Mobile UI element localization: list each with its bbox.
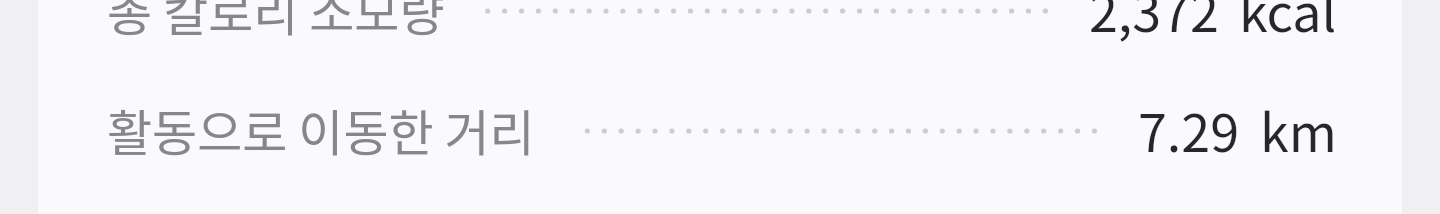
- staticText: 7.29: [1138, 92, 1240, 167]
- staticText: 활동으로 이동한 거리: [107, 94, 535, 165]
- staticText: 총 칼로리 소모량: [107, 0, 445, 45]
- button[interactable]: 총 칼로리 소모량: [38, 0, 1402, 58]
- staticText: kcal: [1239, 0, 1337, 47]
- staticText: 2,372: [1089, 0, 1219, 47]
- button[interactable]: 활동으로 이동한 거리: [38, 58, 1402, 178]
- staticText: km: [1260, 92, 1337, 167]
